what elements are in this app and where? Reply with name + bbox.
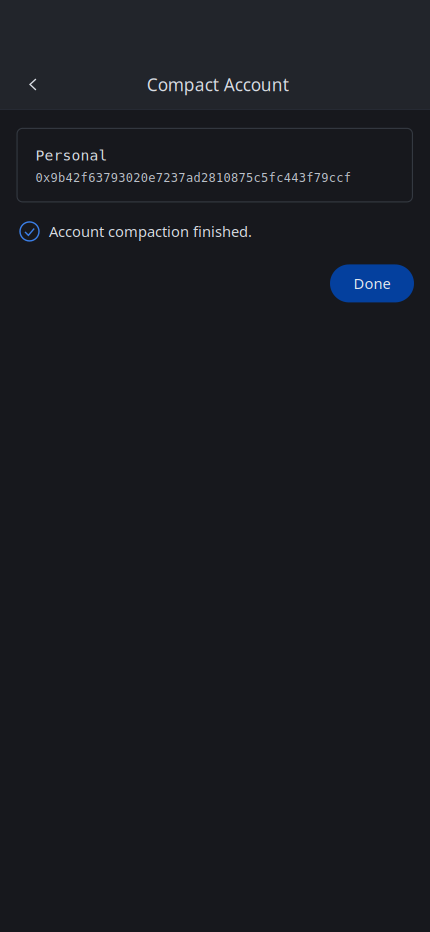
staticText: Done — [353, 273, 390, 293]
staticText: Compact Account — [147, 73, 289, 96]
button[interactable]: Done — [330, 264, 414, 302]
button[interactable]: Back — [11, 62, 55, 106]
staticText: 0x9b42f63793020e7237ad2810875c5fc443f79c… — [35, 171, 351, 185]
staticText: Account compaction finished. — [49, 221, 252, 241]
staticText: Personal — [35, 147, 107, 164]
